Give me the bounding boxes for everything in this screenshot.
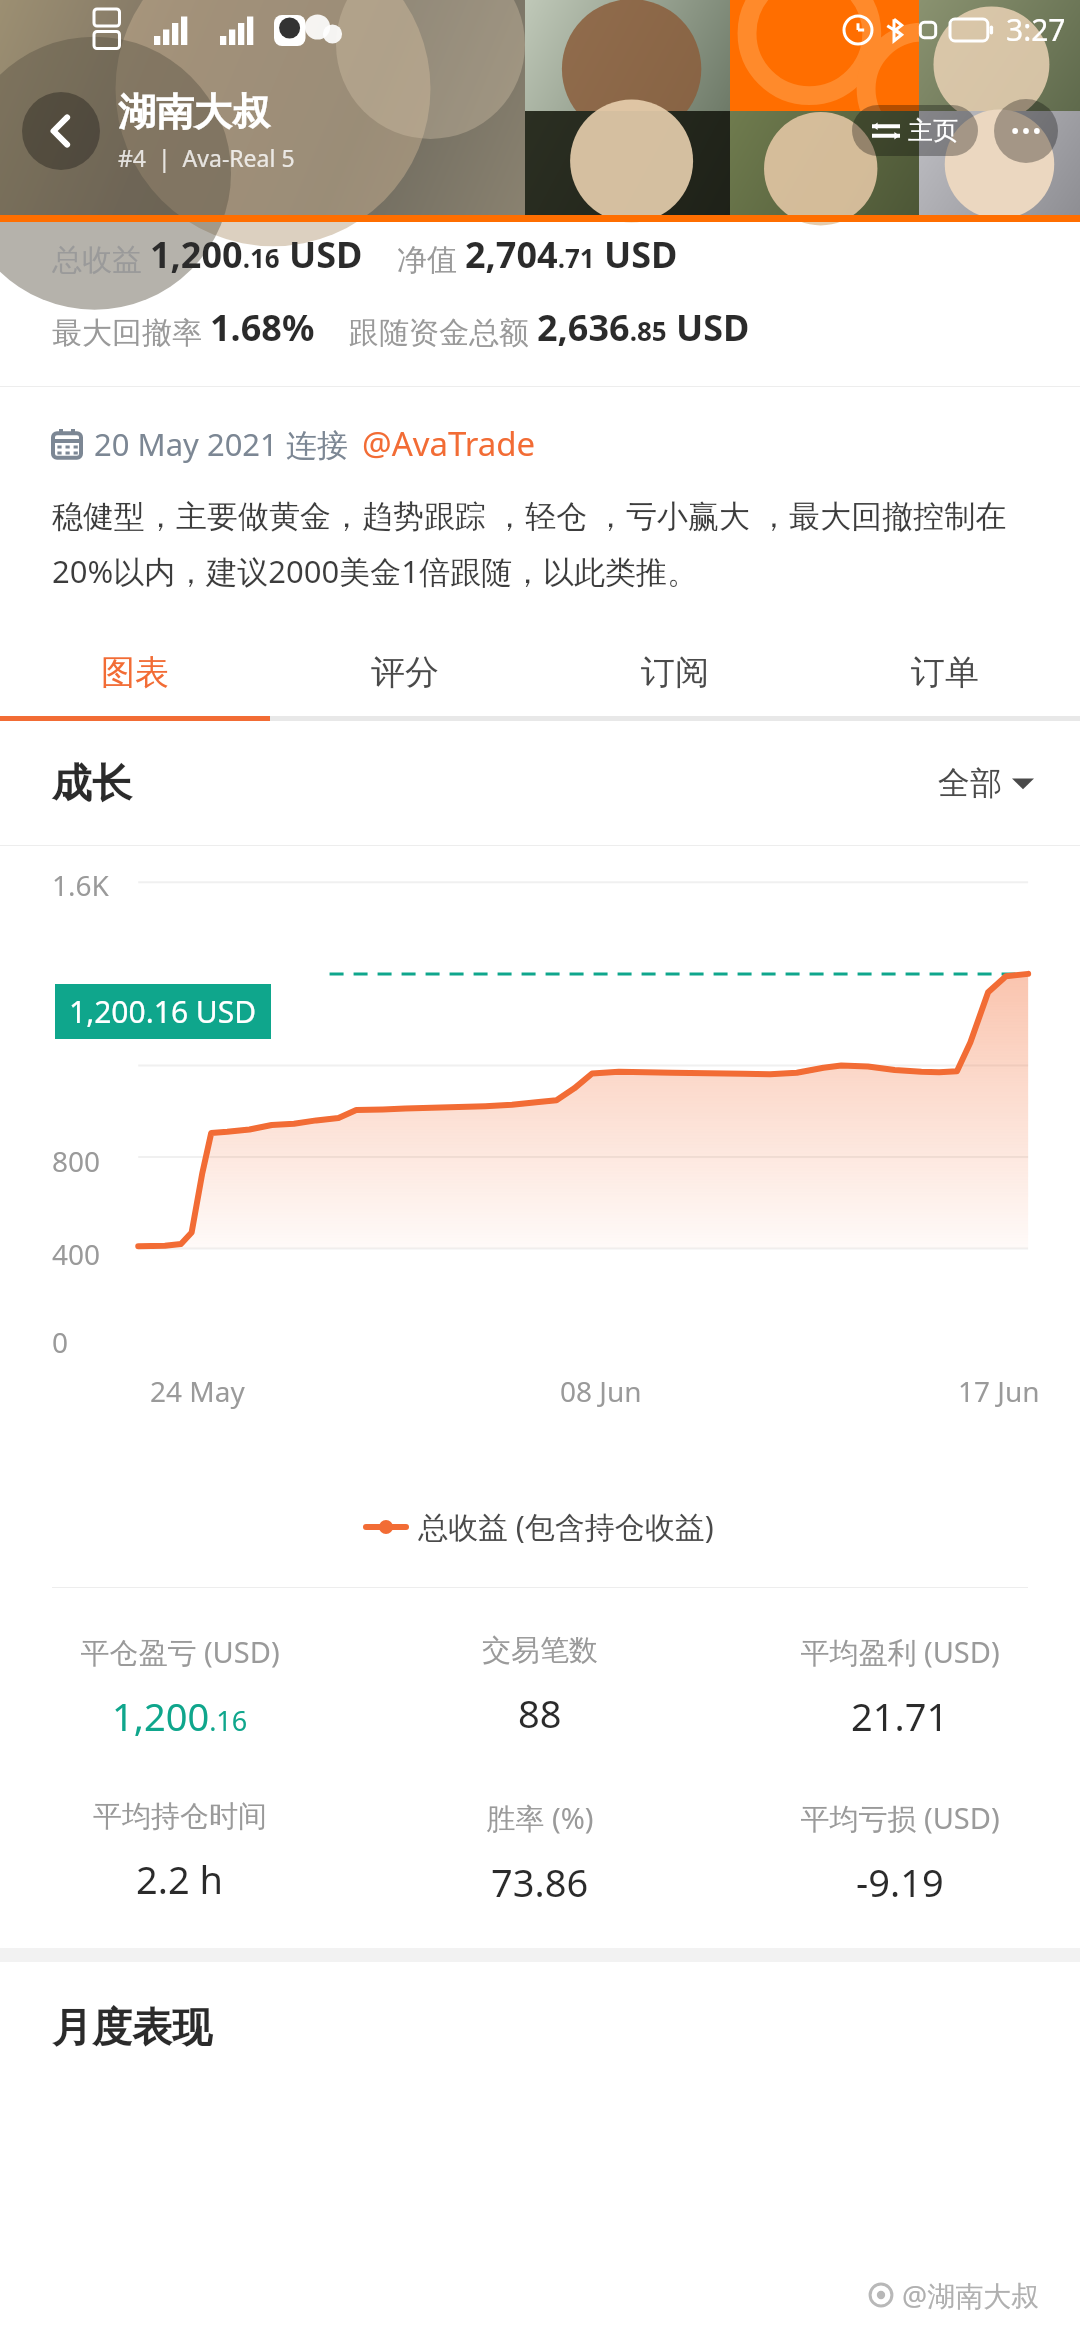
staticText: @AvaTrade bbox=[362, 421, 536, 466]
staticText: 订阅 bbox=[641, 651, 709, 694]
staticText: 图表 bbox=[101, 651, 169, 694]
staticText: 20 May 2021 连接 bbox=[94, 423, 348, 465]
staticText: 总收益 (包含持仓收益) bbox=[418, 1506, 714, 1547]
staticText: 评分 bbox=[371, 651, 439, 694]
staticText: -9.19 bbox=[856, 1856, 944, 1908]
button[interactable]: 订阅 bbox=[540, 629, 810, 716]
staticText: 胜率 (%) bbox=[486, 1798, 594, 1838]
staticText: 平均持仓时间 bbox=[93, 1798, 267, 1835]
staticText: 订单 bbox=[911, 651, 979, 694]
staticText: 湖南大叔 bbox=[118, 88, 270, 136]
staticText: 最大回撤率 bbox=[52, 314, 202, 352]
staticText: 1,200.16 USD bbox=[69, 991, 257, 1032]
button[interactable]: 平均亏损 (USD) bbox=[720, 1798, 1080, 1908]
staticText: 交易笔数 bbox=[482, 1632, 598, 1669]
staticText: 2,636.85 USD bbox=[537, 303, 750, 352]
staticText: 平均盈利 (USD) bbox=[800, 1632, 1000, 1672]
staticText: 全部 bbox=[938, 763, 1002, 803]
button[interactable]: 评分 bbox=[270, 629, 540, 716]
staticText: @湖南大叔 bbox=[902, 2276, 1040, 2314]
staticText: #4 | Ava-Real 5 bbox=[118, 142, 295, 173]
staticText: 2,704.71 USD bbox=[465, 230, 678, 279]
staticText: 平仓盈亏 (USD) bbox=[80, 1632, 280, 1672]
staticText: 3:27 bbox=[1006, 9, 1066, 50]
button[interactable]: More options bbox=[994, 99, 1058, 163]
button[interactable]: 平均持仓时间 bbox=[0, 1798, 360, 1905]
staticText: 1,200.16 bbox=[112, 1690, 248, 1742]
staticText: 88 bbox=[518, 1687, 562, 1739]
staticText: 净值 bbox=[397, 241, 457, 279]
staticText: 1.68% bbox=[210, 303, 315, 352]
staticText: 21.71 bbox=[851, 1690, 949, 1742]
button[interactable]: Back bbox=[22, 92, 100, 170]
staticText: 1.6K bbox=[52, 866, 109, 904]
button[interactable]: 平均盈利 (USD) bbox=[720, 1632, 1080, 1742]
staticText: 24 May bbox=[150, 1372, 245, 1410]
staticText: 73.86 bbox=[491, 1856, 589, 1908]
staticText: 稳健型，主要做黄金，趋势跟踪 ，轻仓 ，亏小赢大 ，最大回撤控制在20%以内，建… bbox=[52, 494, 1044, 593]
button[interactable]: 全部 bbox=[932, 757, 1040, 809]
button[interactable]: 图表 bbox=[0, 629, 270, 716]
button[interactable]: 平仓盈亏 (USD) bbox=[0, 1632, 360, 1742]
button[interactable]: 主页 bbox=[852, 105, 978, 156]
staticText: 跟随资金总额 bbox=[349, 314, 529, 352]
staticText: 1,200.16 USD bbox=[150, 230, 363, 279]
staticText: 成长 bbox=[52, 758, 132, 808]
staticText: 2.2 h bbox=[136, 1853, 224, 1905]
button[interactable]: 胜率 (%) bbox=[360, 1798, 720, 1908]
staticText: 800 bbox=[52, 1142, 101, 1180]
staticText: 总收益 bbox=[52, 241, 142, 279]
staticText: 08 Jun bbox=[560, 1372, 642, 1410]
staticText: 平均亏损 (USD) bbox=[800, 1798, 1000, 1838]
staticText: 主页 bbox=[908, 115, 958, 146]
staticText: 0 bbox=[52, 1323, 69, 1361]
staticText: 月度表现 bbox=[52, 2002, 212, 2052]
staticText: 17 Jun bbox=[958, 1372, 1040, 1410]
button[interactable]: @AvaTrade bbox=[362, 421, 536, 466]
button[interactable]: 交易笔数 bbox=[360, 1632, 720, 1739]
staticText: 400 bbox=[52, 1235, 101, 1273]
button[interactable]: 订单 bbox=[810, 629, 1080, 716]
